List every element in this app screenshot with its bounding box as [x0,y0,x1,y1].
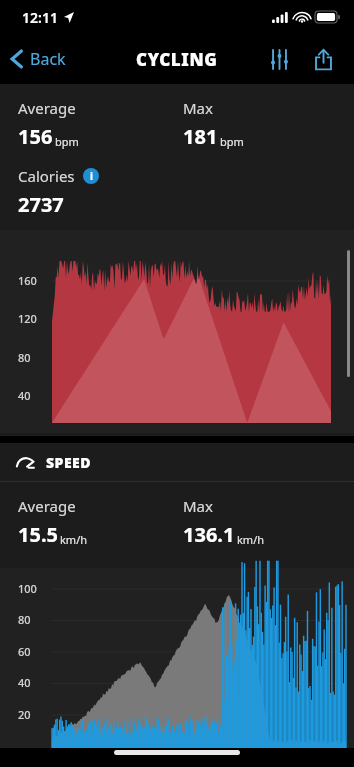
button[interactable]: SPEED [0,443,354,481]
staticText: 80 [18,350,31,365]
staticText: 2737 [18,191,64,218]
button[interactable]: Back [0,42,76,76]
staticText: km/h [60,532,88,547]
staticText: i [90,169,93,183]
button[interactable]: Filter settings [262,42,296,76]
staticText: km/h [237,532,265,547]
staticText: 40 [18,388,31,403]
staticText: bpm [220,134,244,149]
button[interactable]: Share [306,42,340,76]
staticText: 156 [18,123,53,150]
staticText: CYCLING [136,48,218,71]
button[interactable]: Calories info [83,168,99,184]
staticText: 12:11 [22,8,58,27]
staticText: Average [18,496,76,516]
staticText: 120 [18,311,37,326]
staticText: Back [30,48,66,70]
staticText: 40 [18,675,31,690]
staticText: 80 [18,612,31,627]
staticText: 136.1 [183,521,235,548]
staticText: bpm [55,134,79,149]
staticText: 20 [18,707,31,722]
staticText: 60 [18,644,31,659]
staticText: Average [18,98,76,118]
staticText: 100 [18,581,37,596]
staticText: Max [183,496,213,516]
staticText: Calories [18,166,75,186]
staticText: SPEED [46,453,92,472]
staticText: 181 [183,123,218,150]
staticText: Max [183,98,213,118]
staticText: 160 [18,273,37,288]
staticText: 15.5 [18,521,58,548]
